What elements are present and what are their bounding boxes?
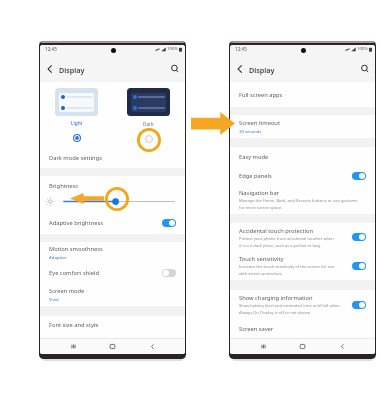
button[interactable] [162,269,176,277]
staticText: Dark [143,121,154,127]
button[interactable]: Edge panels [230,166,375,185]
button[interactable] [352,233,366,241]
button[interactable]: Back [336,340,349,353]
button[interactable]: Search [359,63,371,75]
button[interactable]: Navigation bar [230,185,375,214]
button[interactable]: Adaptive brightness [40,211,185,234]
staticText: Increase the touch sensitivity of the sc… [239,264,335,276]
staticText: 100% [357,46,368,52]
staticText: Vivid [49,296,59,302]
button[interactable]: Motion smoothness [40,242,185,262]
staticText: 30 seconds [239,128,262,134]
staticText: 100% [167,46,178,52]
button[interactable] [127,88,170,116]
staticText: Motion smoothness [49,245,103,253]
button[interactable]: Screen timeout [230,115,375,138]
staticText: Edge panels [239,172,272,180]
button[interactable]: Back [234,63,246,75]
button[interactable]: Light theme [73,134,81,142]
staticText: Display [59,65,85,75]
staticText: Brightness [49,182,79,190]
staticText: Screen saver [239,325,274,333]
button[interactable]: Brightness [40,176,185,211]
staticText: 12:45 [45,46,57,52]
staticText: Manage the Home, Back, and Recents butto… [239,198,358,210]
staticText: Easy mode [239,153,269,161]
staticText: Font size and style [49,321,99,329]
button[interactable] [352,172,366,180]
button[interactable] [352,301,366,309]
button[interactable] [162,219,176,227]
button[interactable]: Recents [67,340,80,353]
button[interactable]: Recents [257,340,270,353]
staticText: Adaptive [49,254,67,260]
button[interactable]: Touch sensitivity [230,251,375,280]
staticText: Screen timeout [239,119,280,127]
button[interactable]: Easy mode [230,147,375,166]
button[interactable]: Home [106,340,119,353]
button[interactable]: Dark mode settings [40,148,185,168]
staticText: Full screen apps [239,91,283,99]
button[interactable]: Screen mode [40,283,185,306]
staticText: Show battery level and estimated time un… [239,303,340,315]
staticText: Display [249,65,275,75]
staticText: Dark mode settings [49,154,102,162]
staticText: Touch sensitivity [239,255,284,263]
staticText: Navigation bar [239,189,279,197]
staticText: Protect your phone from accidental touch… [239,236,334,248]
button[interactable]: Eye comfort shield [40,262,185,283]
button[interactable]: Back [146,340,159,353]
button[interactable]: Home [296,340,309,353]
button[interactable]: Back [44,63,56,75]
button[interactable]: Accidental touch protection [230,223,375,251]
button[interactable]: Font size and style [40,316,185,334]
staticText: Adaptive brightness [49,219,104,227]
button[interactable]: Full screen apps [230,82,375,107]
staticText: Accidental touch protection [239,227,314,235]
staticText: Show charging information [239,294,313,302]
staticText: Light [71,120,83,126]
staticText: Screen mode [49,287,85,295]
button[interactable] [352,262,366,270]
button[interactable]: Show charging information [230,290,375,319]
staticText: Eye comfort shield [49,269,99,277]
button[interactable]: Dark theme [145,135,153,143]
staticText: 12:45 [235,46,247,52]
button[interactable]: Search [169,63,181,75]
button[interactable]: Screen saver [230,319,375,338]
button[interactable] [55,88,98,116]
